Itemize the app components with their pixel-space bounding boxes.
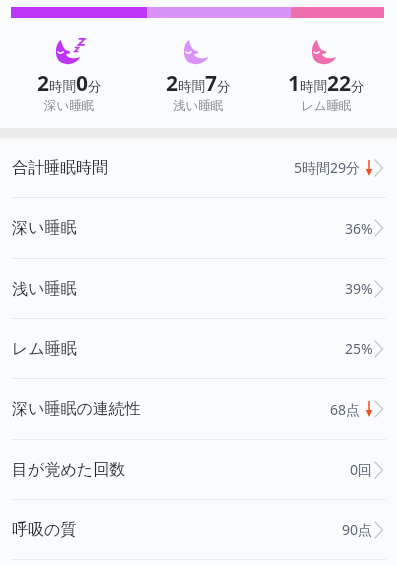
button[interactable]: 合計睡眠時間 bbox=[0, 138, 397, 198]
button[interactable]: 呼吸の質 bbox=[0, 500, 397, 560]
staticText: レム睡眠 bbox=[12, 339, 77, 359]
staticText: 25% bbox=[345, 339, 373, 358]
staticText: 0回 bbox=[350, 460, 373, 479]
staticText: 合計睡眠時間 bbox=[12, 158, 108, 178]
staticText: 5時間29分 bbox=[294, 158, 361, 177]
staticText: レム睡眠 bbox=[301, 98, 352, 114]
staticText: 68点 bbox=[330, 400, 361, 419]
button[interactable]: 目が覚めた回数 bbox=[0, 440, 397, 500]
staticText: 2時間7分 bbox=[166, 69, 231, 98]
button[interactable]: 浅い睡眠 bbox=[0, 259, 397, 319]
staticText: 深い睡眠 bbox=[12, 218, 77, 238]
staticText: 39% bbox=[345, 279, 373, 298]
staticText: 1時間22分 bbox=[288, 69, 365, 98]
button[interactable]: 深い睡眠の連続性 bbox=[0, 379, 397, 440]
staticText: 浅い睡眠 bbox=[12, 279, 77, 299]
staticText: 36% bbox=[345, 219, 373, 238]
staticText: 2時間0分 bbox=[37, 69, 102, 98]
button[interactable]: 深い睡眠 bbox=[0, 198, 397, 259]
staticText: 目が覚めた回数 bbox=[12, 460, 126, 480]
button[interactable]: レム睡眠 bbox=[0, 319, 397, 379]
staticText: 浅い睡眠 bbox=[173, 98, 224, 114]
staticText: 深い睡眠の連続性 bbox=[12, 399, 141, 419]
staticText: 深い睡眠 bbox=[44, 98, 95, 114]
staticText: 90点 bbox=[342, 520, 373, 539]
staticText: 呼吸の質 bbox=[12, 520, 77, 540]
